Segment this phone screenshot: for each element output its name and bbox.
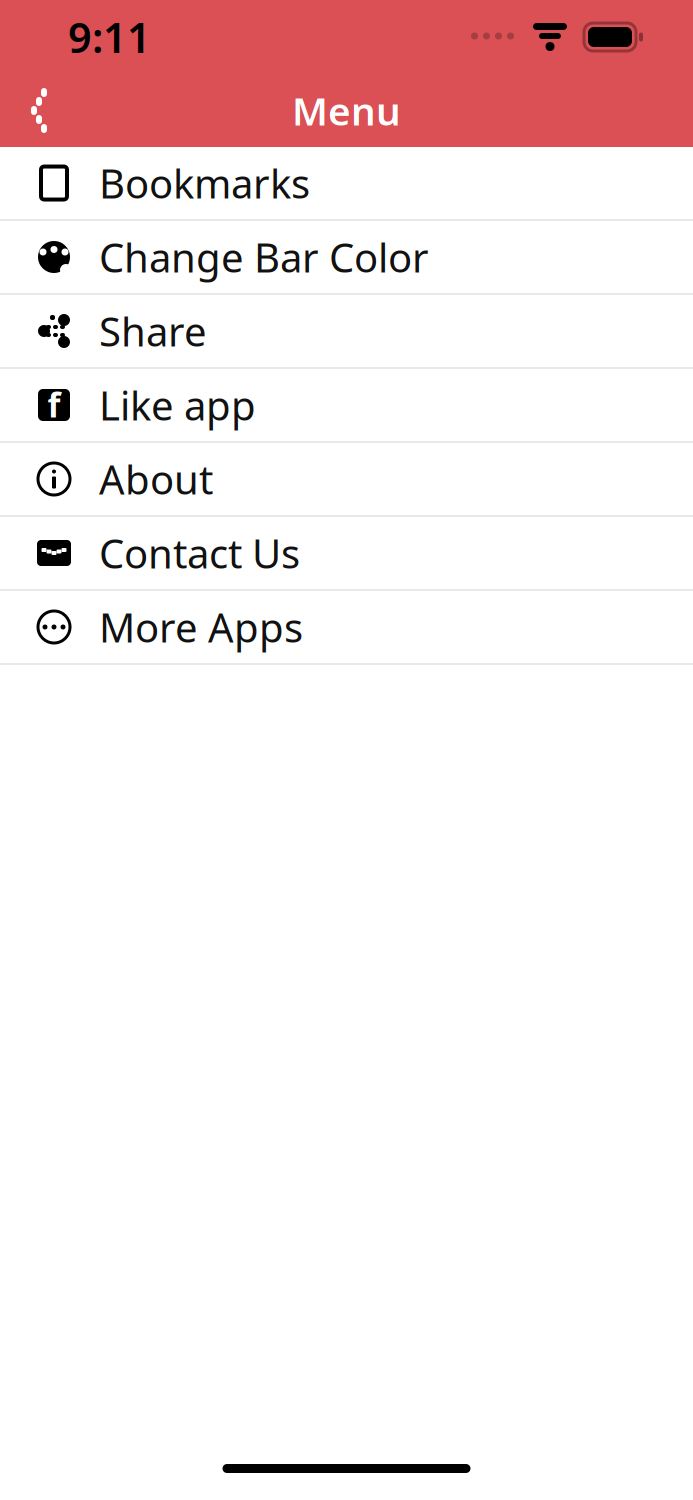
staticText: Change Bar Color	[99, 230, 429, 283]
button[interactable]: Share	[0, 295, 693, 367]
staticText: More Apps	[99, 600, 303, 653]
staticText: Bookmarks	[99, 156, 310, 209]
button[interactable]: f	[0, 369, 693, 441]
button[interactable]: Back	[0, 74, 72, 147]
staticText: Menu	[292, 85, 401, 136]
button[interactable]: Bookmarks	[0, 147, 693, 219]
button[interactable]: More Apps	[0, 591, 693, 663]
staticText: f	[47, 382, 60, 427]
button[interactable]: Contact Us	[0, 517, 693, 589]
staticText: Contact Us	[99, 526, 300, 579]
button[interactable]: Change Bar Color	[0, 221, 693, 293]
staticText: Like app	[99, 378, 256, 431]
button[interactable]: About	[0, 443, 693, 515]
staticText: About	[99, 452, 213, 505]
staticText: 9:11	[68, 10, 151, 64]
staticText: Share	[99, 304, 207, 357]
